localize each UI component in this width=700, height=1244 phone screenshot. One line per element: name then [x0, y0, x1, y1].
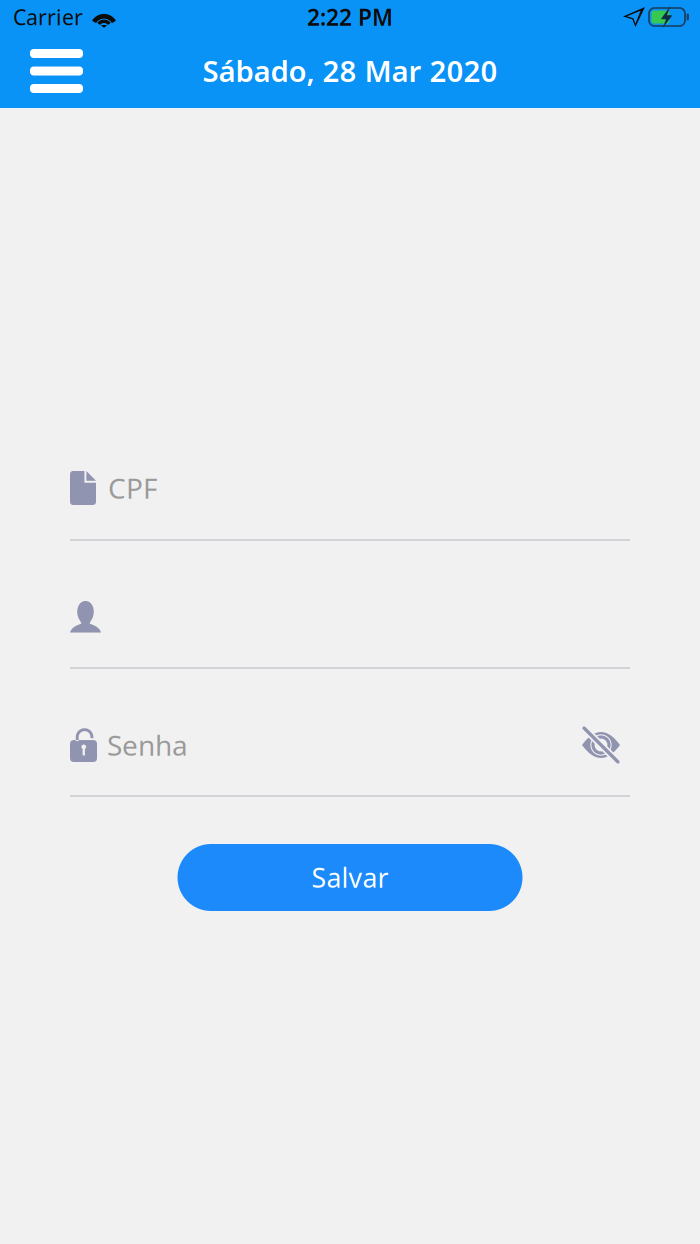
button[interactable]: Salvar: [177, 844, 522, 911]
staticText: Salvar: [311, 860, 388, 895]
button[interactable]: Show password: [581, 721, 630, 769]
staticText: Sábado, 28 Mar 2020: [202, 51, 497, 90]
staticText: 2:22 PM: [307, 2, 393, 32]
staticText: CPF: [108, 469, 158, 507]
staticText: Carrier: [13, 3, 83, 31]
staticText: Senha: [107, 726, 188, 764]
button[interactable]: Menu: [18, 44, 95, 104]
